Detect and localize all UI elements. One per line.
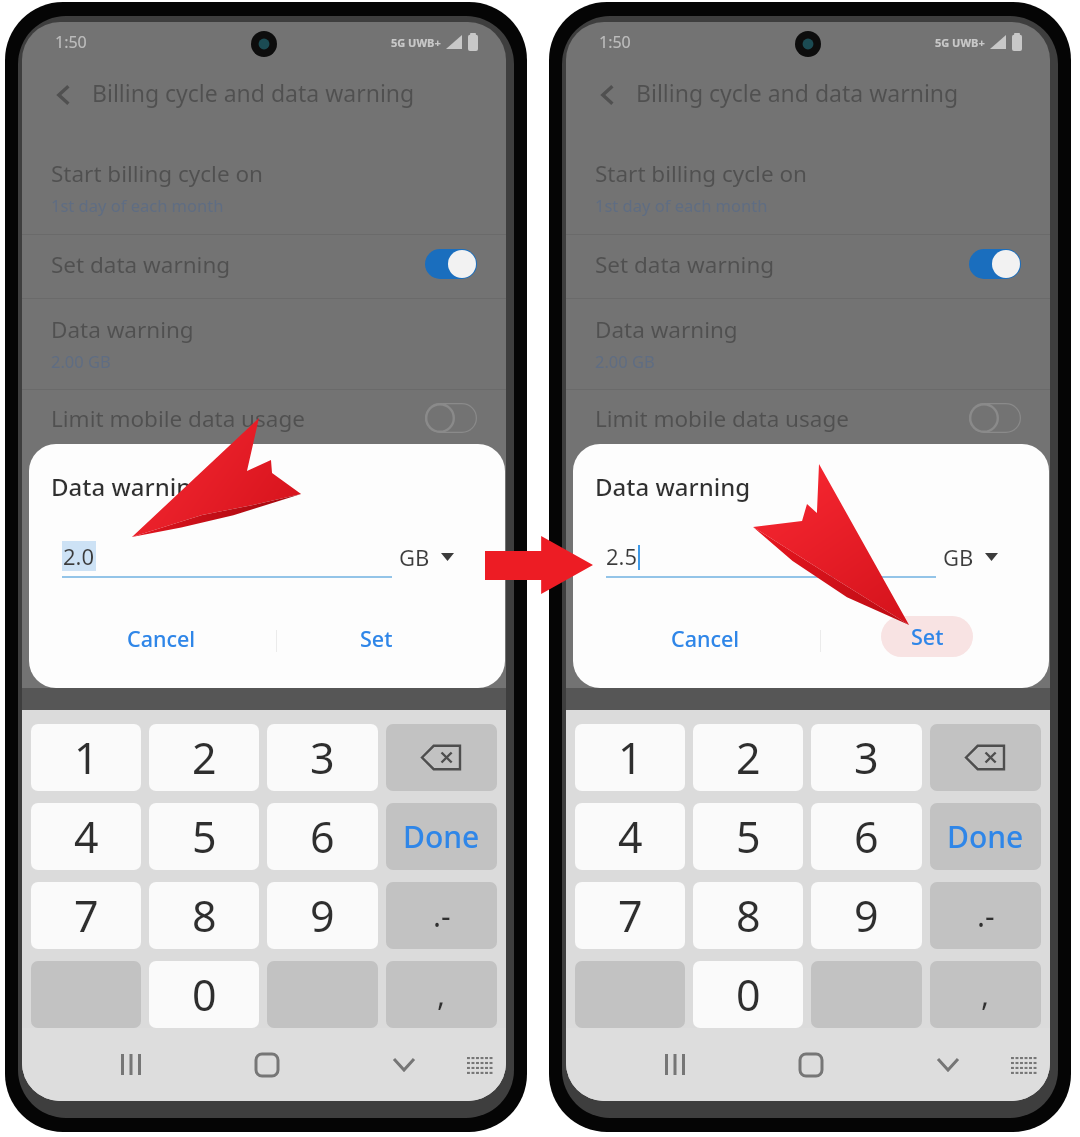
staticText: Limit mobile data usage [595,403,849,434]
button[interactable]: Navigate up [45,76,83,114]
staticText: 1:50 [55,31,87,53]
button[interactable]: Cancel [601,616,810,660]
staticText: 2.5 [606,541,638,571]
button[interactable]: .- [386,882,497,949]
button[interactable]: Change keyboard [446,1028,506,1101]
button[interactable]: Recent apps [97,1028,165,1101]
button[interactable]: Done [386,803,497,870]
button[interactable]: Toggle Limit mobile data usage [425,403,477,433]
staticText: 0 [192,965,217,1024]
staticText: Data warning [51,314,194,345]
staticText: , [437,974,446,1015]
staticText: 2.00 GB [595,350,655,372]
button[interactable]: 6 [811,803,922,870]
staticText: 1st day of each month [51,194,224,216]
button[interactable]: 7 [31,882,141,949]
staticText: Start billing cycle on [595,158,807,189]
button[interactable]: 5 [149,803,259,870]
staticText: 5G UWB+ [391,35,441,50]
button[interactable]: Data warning [566,297,1050,388]
staticText: 4 [74,807,99,866]
staticText: 1 [618,728,643,787]
button[interactable]: Recent apps [641,1028,709,1101]
staticText: Set data warning [595,249,775,280]
button[interactable]: 1 [575,724,685,791]
staticText: Start billing cycle on [51,158,263,189]
staticText: Data warning [595,314,738,345]
button[interactable]: Change keyboard [990,1028,1050,1101]
button[interactable]: 8 [693,882,803,949]
staticText: 9 [854,886,879,945]
staticText: Data warning [595,470,751,503]
button[interactable]: 8 [149,882,259,949]
button[interactable]: Limit mobile data usage [566,385,1050,451]
button[interactable]: Toggle Set data warning [969,249,1021,279]
button[interactable]: Done [930,803,1041,870]
staticText: 1st day of each month [595,194,768,216]
button[interactable]: 2 [693,724,803,791]
staticText: Cancel [671,624,740,653]
staticText: 3 [854,728,879,787]
staticText: Done [403,816,480,857]
button[interactable]: 0 [149,961,259,1028]
staticText: 6 [310,807,335,866]
staticText: Cancel [127,624,196,653]
button[interactable]: Delete [386,724,497,791]
button[interactable]: 0 [693,961,803,1028]
staticText: 1 [74,728,99,787]
button[interactable]: Set [881,616,973,657]
button[interactable]: Delete [930,724,1041,791]
staticText: 1:50 [599,31,631,53]
button[interactable]: 1 [31,724,141,791]
button[interactable]: Start billing cycle on [566,144,1050,230]
button[interactable]: Toggle Set data warning [425,249,477,279]
button[interactable]: 9 [811,882,922,949]
button[interactable]: 7 [575,882,685,949]
staticText: Data warning [51,470,207,503]
staticText: 8 [736,886,761,945]
button[interactable]: Set [272,616,481,660]
staticText: 5 [736,807,761,866]
staticText: 2 [736,728,761,787]
button[interactable]: Set data warning [22,232,506,296]
button[interactable]: GB [943,542,998,572]
staticText: 6 [854,807,879,866]
staticText: 2.0 [63,541,95,571]
button[interactable]: Home [233,1028,301,1101]
button[interactable]: Cancel [57,616,266,660]
button[interactable]: , [930,961,1041,1028]
button[interactable]: GB [399,542,454,572]
button[interactable]: 2 [149,724,259,791]
staticText: .- [433,895,451,936]
button[interactable]: .- [930,882,1041,949]
button[interactable]: 9 [267,882,378,949]
button[interactable]: Hide keyboard [914,1028,982,1101]
staticText: 5G UWB+ [935,35,985,50]
button[interactable]: 4 [31,803,141,870]
staticText: 4 [618,807,643,866]
staticText: 0 [736,965,761,1024]
button[interactable]: Toggle Limit mobile data usage [969,403,1021,433]
button[interactable]: Home [777,1028,845,1101]
button[interactable]: Hide keyboard [370,1028,438,1101]
button[interactable]: 3 [267,724,378,791]
button[interactable]: Data warning [22,297,506,388]
button[interactable]: 3 [811,724,922,791]
button[interactable]: Limit mobile data usage [22,385,506,451]
button[interactable]: 5 [693,803,803,870]
button[interactable]: , [386,961,497,1028]
staticText: Set [360,624,393,653]
button[interactable]: 4 [575,803,685,870]
button[interactable]: Start billing cycle on [22,144,506,230]
button[interactable]: Set data warning [566,232,1050,296]
staticText: 9 [310,886,335,945]
button[interactable]: 6 [267,803,378,870]
button[interactable]: Navigate up [589,76,627,114]
staticText: .- [977,895,995,936]
staticText: 5 [192,807,217,866]
staticText: 2 [192,728,217,787]
